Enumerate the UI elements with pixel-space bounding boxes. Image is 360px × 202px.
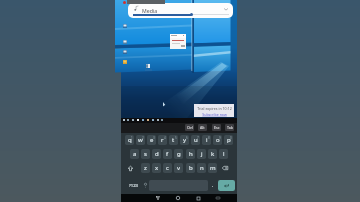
button[interactable]: b [186,163,195,173]
button[interactable]: Ctrl [185,124,194,131]
staticText: Ctrl [187,125,193,130]
staticText: Alt [200,125,205,130]
button[interactable]: l [219,149,228,159]
staticText: u [194,136,198,144]
button[interactable]: Switch keyboard [214,194,222,202]
staticText: Trial expires in 10:12 [197,106,232,111]
button[interactable]: j [197,149,206,159]
staticText: Media [142,7,158,14]
button[interactable]: Expand media output [223,6,229,12]
staticText: x [155,164,159,172]
staticText: t [172,136,175,144]
staticText: y [183,136,187,144]
staticText: Subscribe now [202,112,227,117]
staticText: 9 [219,136,221,140]
staticText: d [155,150,159,158]
staticText: Esc [214,125,220,130]
staticText: p [227,136,231,144]
button[interactable]: v [174,163,183,173]
button[interactable]: m [208,163,217,173]
button[interactable]: i [202,135,211,145]
staticText: 0 [230,136,232,140]
button[interactable]: Media [128,3,233,18]
button[interactable]: r [158,135,167,145]
staticText: f [166,150,169,158]
staticText: 2 [142,136,144,140]
staticText: z [144,164,147,172]
button[interactable]: f [163,149,172,159]
staticText: o [216,136,220,144]
staticText: k [211,150,215,158]
button[interactable]: Trial expires in 10:12 [194,104,234,117]
button[interactable]: x [152,163,161,173]
staticText: 6 [186,136,188,140]
staticText: 8 [208,136,210,140]
button[interactable]: n [197,163,206,173]
staticText: v [177,164,181,172]
button[interactable]: Shift [125,163,136,173]
button[interactable]: Esc [212,124,221,131]
button[interactable]: Recents [194,194,202,202]
button[interactable]: Enter [218,180,235,191]
staticText: 4 [164,136,166,140]
staticText: c [166,164,169,172]
button[interactable]: y [180,135,189,145]
button[interactable]: h [186,149,195,159]
staticText: 7 [197,136,199,140]
button[interactable]: Tab [225,124,234,131]
button[interactable]: k [208,149,217,159]
button[interactable]: Backspace [219,163,230,173]
button[interactable]: d [152,149,161,159]
button[interactable]: Hide keyboard [154,194,162,202]
staticText: Tab [227,125,233,130]
staticText: w [138,136,143,144]
button[interactable]: ?123 [126,180,141,191]
staticText: 3 [153,136,155,140]
button[interactable]: z [141,163,150,173]
staticText: n [200,164,204,172]
button[interactable]: e [147,135,156,145]
staticText: 5 [175,136,177,140]
staticText: i [206,136,208,144]
button[interactable]: . [209,180,217,191]
button[interactable]: Emoji [141,180,149,191]
staticText: ?123 [129,183,139,189]
button[interactable]: u [191,135,200,145]
button[interactable]: g [174,149,183,159]
staticText: e [150,136,154,144]
button[interactable]: a [130,149,139,159]
staticText: s [144,150,147,158]
button[interactable]: p [224,135,233,145]
staticText: j [201,150,203,158]
staticText: g [177,150,181,158]
staticText: . [212,182,214,189]
staticText: h [189,150,193,158]
staticText: m [210,164,216,172]
button[interactable]: q [125,135,134,145]
staticText: r [161,136,164,144]
button[interactable]: Home [174,194,182,202]
button[interactable]: c [163,163,172,173]
staticText: a [133,150,137,158]
button[interactable]: s [141,149,150,159]
staticText: q [128,136,132,144]
button[interactable]: t [169,135,178,145]
staticText: l [223,150,225,158]
button[interactable]: o [213,135,222,145]
button[interactable]: w [136,135,145,145]
staticText: 1 [131,136,133,140]
staticText: b [189,164,193,172]
button[interactable]: Alt [198,124,207,131]
